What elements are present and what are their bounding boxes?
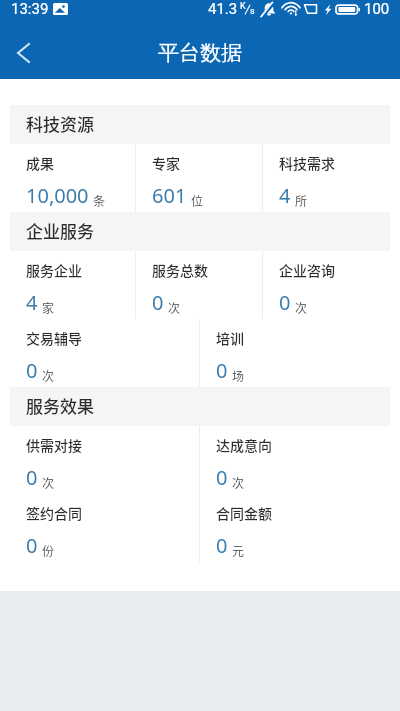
staticText: 份 <box>42 542 55 559</box>
staticText: 100 <box>364 0 390 18</box>
staticText: 元 <box>232 542 245 559</box>
staticText: 合同金额 <box>216 503 272 523</box>
staticText: 601 <box>152 182 187 209</box>
staticText: 达成意向 <box>216 435 272 455</box>
staticText: 企业服务 <box>26 218 94 243</box>
staticText: 交易辅导 <box>26 328 82 348</box>
staticText: 所 <box>295 192 308 209</box>
staticText: 家 <box>42 299 55 316</box>
staticText: 科技需求 <box>279 153 335 173</box>
button[interactable]: 交易辅导 <box>10 319 200 387</box>
button[interactable]: 专家 <box>136 144 263 212</box>
staticText: 成果 <box>26 153 54 173</box>
staticText: 4 <box>26 289 38 316</box>
staticText: 场 <box>232 367 245 384</box>
button[interactable]: Back <box>0 30 46 76</box>
button[interactable]: 服务企业 <box>10 251 136 319</box>
staticText: 次 <box>295 299 308 316</box>
button[interactable]: 供需对接 <box>10 426 200 494</box>
button[interactable]: 成果 <box>10 144 136 212</box>
staticText: 4 <box>279 182 291 209</box>
staticText: 次 <box>42 474 55 491</box>
staticText: 0 <box>26 357 38 384</box>
button[interactable]: 签约合同 <box>10 494 200 562</box>
staticText: 次 <box>168 299 181 316</box>
staticText: 培训 <box>216 328 244 348</box>
staticText: 次 <box>232 474 245 491</box>
staticText: 供需对接 <box>26 435 82 455</box>
staticText: 科技资源 <box>26 111 94 136</box>
button[interactable]: 服务总数 <box>136 251 263 319</box>
staticText: 次 <box>42 367 55 384</box>
staticText: 0 <box>26 532 38 559</box>
staticText: 0 <box>279 289 291 316</box>
staticText: 签约合同 <box>26 503 82 523</box>
staticText: 0 <box>216 532 228 559</box>
staticText: 服务企业 <box>26 260 82 280</box>
staticText: 10,000 <box>26 182 89 209</box>
staticText: 13:39 <box>11 0 49 18</box>
staticText: 企业咨询 <box>279 260 335 280</box>
staticText: K <box>240 1 246 12</box>
button[interactable]: 企业咨询 <box>263 251 390 319</box>
button[interactable]: 科技需求 <box>263 144 390 212</box>
staticText: 服务效果 <box>26 393 94 418</box>
staticText: 服务总数 <box>152 260 208 280</box>
staticText: 位 <box>191 192 204 209</box>
button[interactable]: 培训 <box>200 319 390 387</box>
staticText: 0 <box>26 464 38 491</box>
staticText: s <box>250 6 255 17</box>
button[interactable]: 达成意向 <box>200 426 390 494</box>
button[interactable]: 合同金额 <box>200 494 390 562</box>
staticText: 0 <box>216 357 228 384</box>
staticText: 专家 <box>152 153 180 173</box>
staticText: 条 <box>93 192 106 209</box>
staticText: 41.3 <box>208 0 238 18</box>
staticText: 平台数据 <box>158 40 242 66</box>
staticText: 0 <box>216 464 228 491</box>
staticText: 0 <box>152 289 164 316</box>
